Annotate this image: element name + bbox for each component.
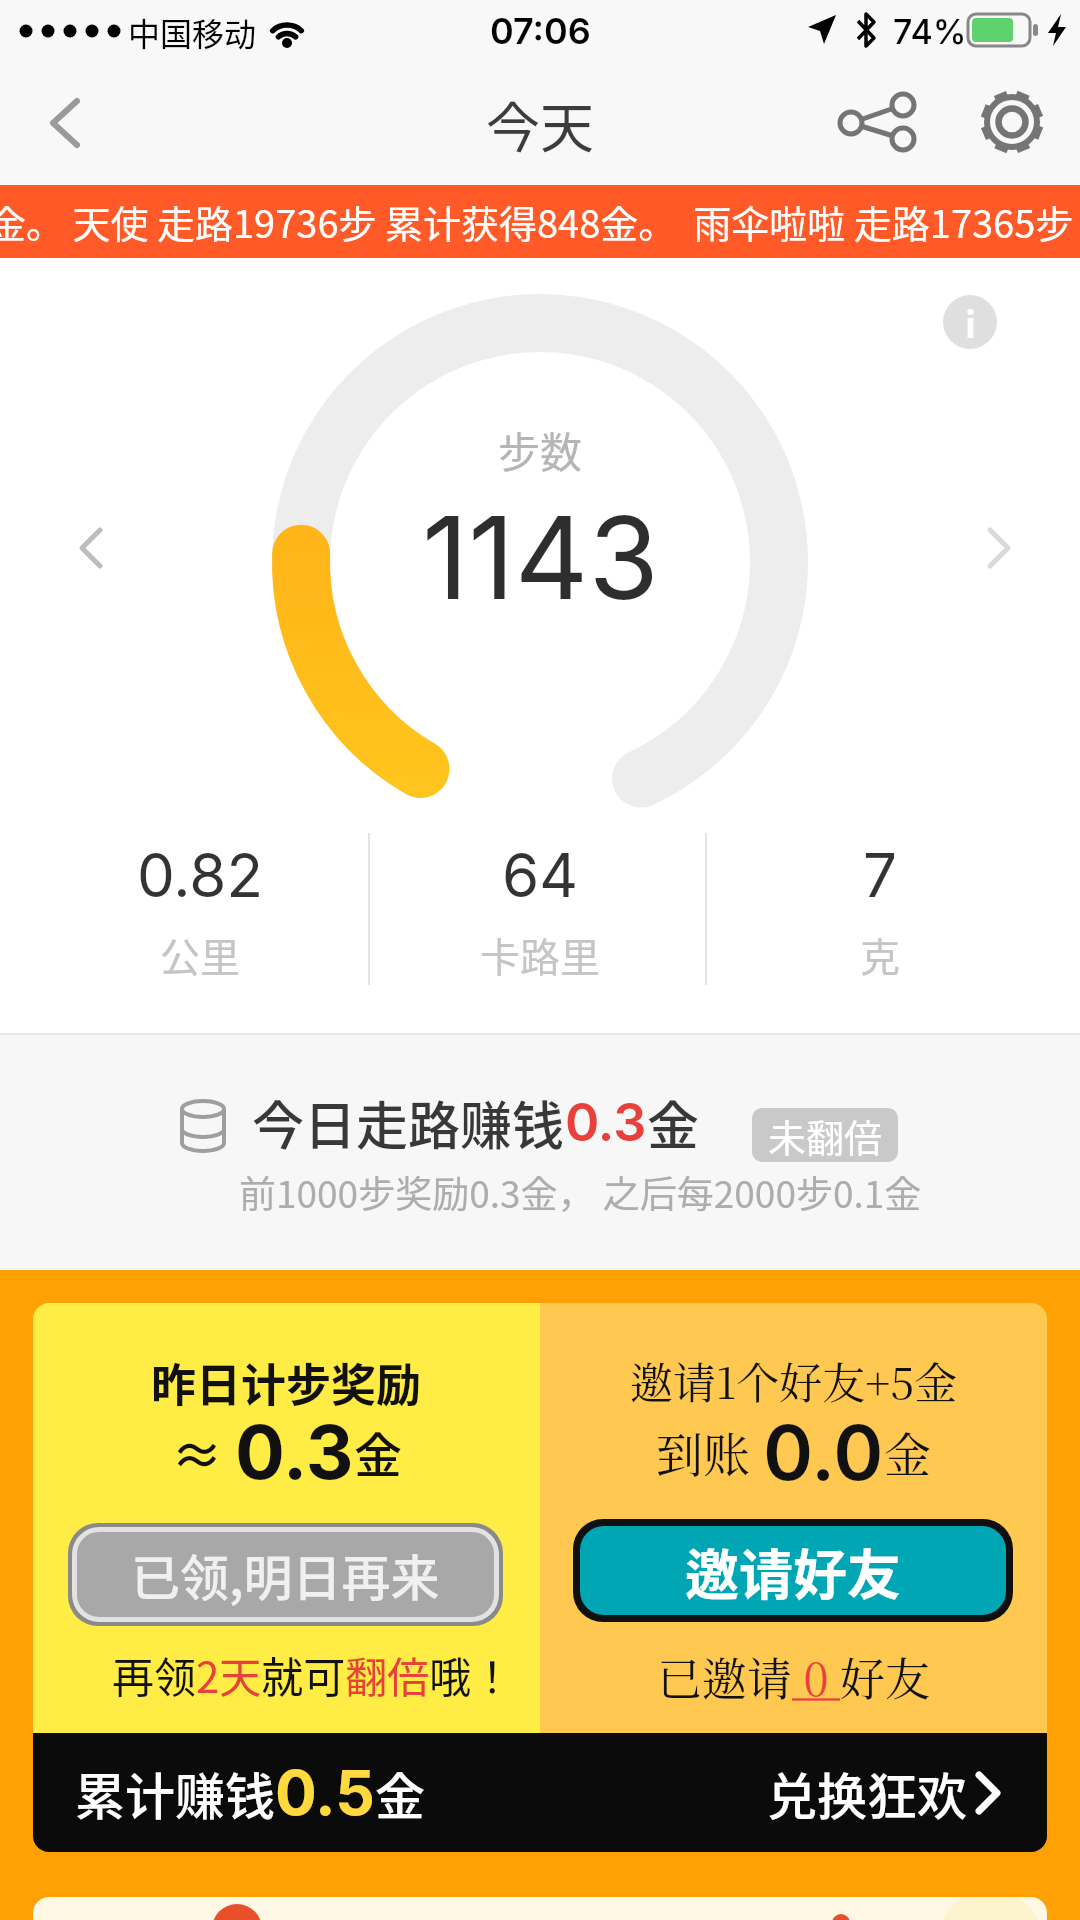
button[interactable]: i [943,295,997,349]
button[interactable]: 邀请好友 [573,1519,1013,1622]
button[interactable] [830,77,920,167]
staticText: 0.3 [235,1407,354,1497]
staticText: 中国移动 [128,9,257,55]
staticText: i [965,296,976,348]
staticText: 到账 [656,1418,763,1486]
staticText: 累计赚钱 [75,1757,275,1829]
staticText: ≈ [171,1415,235,1490]
staticText: 今天 [486,85,594,163]
button[interactable] [967,77,1057,167]
staticText: 0.82 [137,839,263,912]
staticText: 再领2天就可翻倍哦！ [112,1644,514,1705]
staticText: 邀请1个好友+5金 [630,1350,958,1412]
staticText: 金 [884,1418,931,1486]
staticText: 0.0 [763,1406,884,1498]
staticText: 邀请好友 [685,1532,901,1610]
staticText: 克 [860,926,900,984]
staticText: 前1000步奖励0.3金， 之后每2000步0.1金 [239,1165,922,1219]
staticText: 卡路里 [480,926,600,984]
staticText: 金。 天使 走路19736步 累计获得848金。 雨伞啦啦 走路17365步 [0,194,1080,249]
staticText: 今日走路赚钱 [252,1085,565,1160]
button[interactable]: 金。 天使 走路19736步 累计获得848金。 雨伞啦啦 走路17365步 [0,185,1080,258]
staticText: 昨日计步奖励 [151,1350,422,1415]
staticText: 金 [354,1417,403,1487]
staticText: 已邀请 0 好友 [657,1644,931,1709]
staticText: 已领,明日再来 [131,1539,440,1610]
staticText: 07:06 [490,9,591,53]
staticText: 兑换狂欢 [767,1757,967,1829]
staticText: 金 [375,1757,425,1829]
staticText: 未翻倍 [768,1108,883,1162]
button[interactable] [20,80,110,170]
staticText: 0.5 [275,1755,375,1830]
button[interactable]: 已领,明日再来 [68,1523,503,1626]
staticText: 7 [863,839,897,912]
staticText: 1143 [422,489,659,627]
staticText: 74% [893,11,967,52]
staticText: 公里 [160,926,240,984]
staticText: 步数 [498,419,583,479]
staticText: 0.3 [565,1091,647,1154]
button[interactable]: 累计赚钱 [33,1733,1047,1852]
staticText: 金 [647,1085,700,1160]
staticText: 64 [502,839,578,912]
